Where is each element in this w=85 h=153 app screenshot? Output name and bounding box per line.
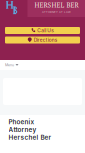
staticText: Phoenix [8, 118, 34, 126]
staticText: ATTORNEY AT LAW [42, 10, 71, 13]
staticText: Herschel Ber [8, 133, 51, 141]
staticText: Attorney [8, 126, 36, 133]
button[interactable]: Menu [0, 60, 85, 70]
button[interactable]: Call Us [5, 27, 80, 34]
staticText: Menu [5, 63, 14, 67]
staticText: Call Us [37, 28, 54, 33]
staticText: HERSHEL BER [34, 0, 78, 9]
staticText: Directions [34, 37, 58, 43]
button[interactable]: Directions [5, 36, 80, 43]
